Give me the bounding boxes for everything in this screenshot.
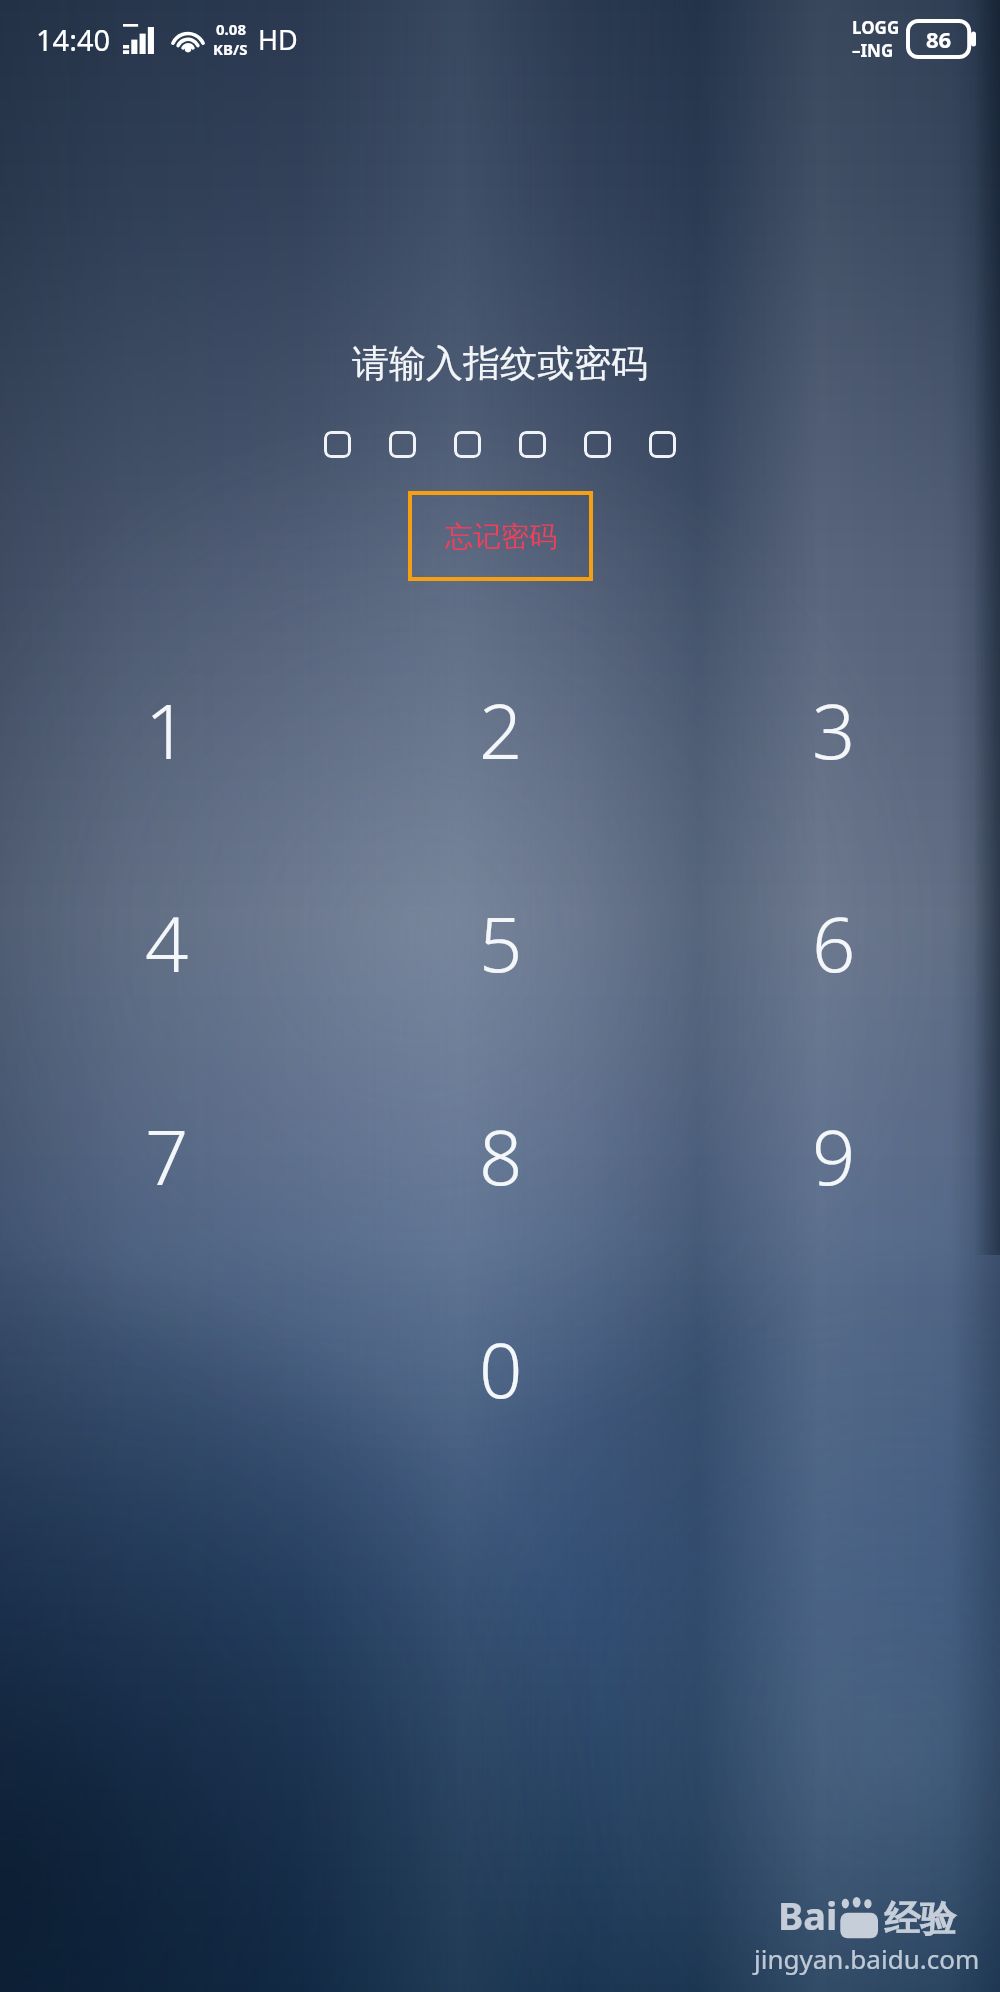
button[interactable]: 9: [667, 1049, 1000, 1262]
staticText: 7: [145, 1104, 189, 1208]
button[interactable]: 3: [667, 623, 1000, 836]
staticText: HD: [258, 21, 298, 58]
staticText: 4: [145, 891, 189, 995]
staticText: jingyan.baidu.com: [754, 1941, 980, 1976]
button[interactable]: 4: [0, 836, 334, 1049]
other: Battery 86 percent: [908, 21, 976, 57]
staticText: 经验: [884, 1896, 956, 1941]
staticText: 8: [479, 1104, 523, 1208]
staticText: 请输入指纹或密码: [0, 340, 1000, 387]
staticText: 0: [479, 1317, 523, 1421]
staticText: 14:40: [36, 20, 111, 59]
staticText: 9: [812, 1104, 856, 1208]
button[interactable]: 7: [0, 1049, 334, 1262]
staticText: KB/S: [213, 39, 248, 59]
staticText: Bai: [778, 1889, 838, 1941]
button[interactable]: 1: [0, 623, 334, 836]
staticText: 86: [926, 24, 952, 54]
staticText: LOGG: [852, 16, 900, 39]
button[interactable]: 忘记密码: [408, 491, 593, 581]
staticText: 3: [812, 678, 856, 782]
staticText: 2: [479, 678, 523, 782]
staticText: 1: [145, 678, 189, 782]
button[interactable]: 5: [334, 836, 667, 1049]
staticText: 6: [812, 891, 856, 995]
button[interactable]: 0: [334, 1262, 667, 1475]
button[interactable]: 8: [334, 1049, 667, 1262]
staticText: 5: [479, 891, 523, 995]
other: Mobile signal 4G: [123, 24, 159, 54]
other: Wi-Fi: [171, 25, 205, 53]
staticText: –ING: [852, 39, 894, 62]
staticText: 忘记密码: [445, 519, 557, 554]
button[interactable]: 2: [334, 623, 667, 836]
button[interactable]: 6: [667, 836, 1000, 1049]
staticText: 0.08: [216, 19, 246, 39]
